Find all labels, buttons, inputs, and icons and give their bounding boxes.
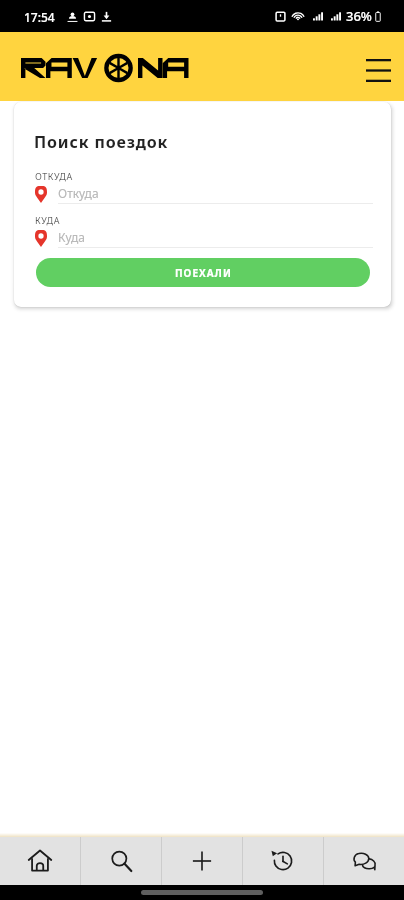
staticText: ОТКУДА [35,170,73,182]
staticText: 36% [346,7,372,25]
staticText: Откуда [58,185,99,201]
staticText: Поиск поездок [34,131,169,153]
button[interactable]: Open menu [356,48,400,92]
staticText: 17:54 [24,9,55,25]
staticText: Куда [58,229,85,245]
button[interactable]: ОТКУДА [35,170,373,204]
button[interactable]: Search [81,837,161,885]
staticText: КУДА [35,214,60,226]
button[interactable]: Home [0,837,80,885]
button[interactable]: КУДА [35,214,373,248]
button[interactable]: History [243,837,323,885]
button[interactable]: Create ride [162,837,242,885]
staticText: ПОЕХАЛИ [175,266,232,280]
button[interactable]: ПОЕХАЛИ [36,258,370,287]
button[interactable]: Messages [324,837,404,885]
